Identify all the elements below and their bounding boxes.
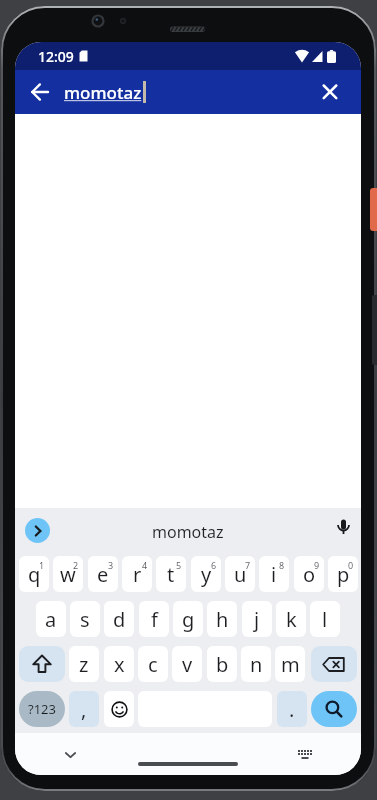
button[interactable] bbox=[58, 743, 82, 767]
staticText: m bbox=[281, 651, 300, 678]
button[interactable] bbox=[19, 646, 65, 682]
button[interactable]: x bbox=[104, 646, 134, 682]
staticText: w bbox=[60, 561, 76, 588]
button[interactable]: l bbox=[310, 601, 340, 637]
button[interactable]: o bbox=[294, 556, 324, 592]
button[interactable] bbox=[314, 76, 346, 108]
staticText: 9 bbox=[314, 559, 320, 571]
staticText: x bbox=[114, 651, 125, 678]
staticText: o bbox=[303, 561, 316, 588]
staticText: k bbox=[286, 606, 297, 633]
button[interactable]: a bbox=[36, 601, 66, 637]
button[interactable]: e bbox=[88, 556, 118, 592]
staticText: . bbox=[289, 696, 295, 723]
button[interactable]: n bbox=[241, 646, 271, 682]
button[interactable]: g bbox=[173, 601, 203, 637]
staticText: e bbox=[97, 561, 109, 588]
button[interactable]: t bbox=[156, 556, 186, 592]
staticText: u bbox=[234, 561, 247, 588]
button[interactable]: i bbox=[259, 556, 289, 592]
staticText: l bbox=[322, 606, 328, 633]
button[interactable]: z bbox=[69, 646, 99, 682]
staticText: 2 bbox=[73, 559, 79, 571]
staticText: 3 bbox=[108, 559, 114, 571]
button[interactable]: v bbox=[172, 646, 202, 682]
button[interactable]: m bbox=[275, 646, 305, 682]
staticText: y bbox=[201, 561, 212, 588]
staticText: 12:09 bbox=[38, 47, 74, 66]
button[interactable]: , bbox=[69, 691, 99, 727]
button[interactable]: d bbox=[104, 601, 134, 637]
button[interactable] bbox=[293, 743, 317, 767]
staticText: t bbox=[167, 561, 175, 588]
button[interactable]: b bbox=[207, 646, 237, 682]
staticText: q bbox=[28, 561, 41, 588]
staticText: s bbox=[80, 606, 90, 633]
staticText: c bbox=[148, 651, 158, 678]
staticText: 5 bbox=[176, 559, 182, 571]
button[interactable] bbox=[24, 76, 56, 108]
button[interactable]: y bbox=[191, 556, 221, 592]
button[interactable]: c bbox=[138, 646, 168, 682]
staticText: g bbox=[182, 606, 195, 633]
staticText: momotaz bbox=[64, 81, 142, 104]
staticText: i bbox=[271, 561, 277, 588]
button[interactable]: u bbox=[225, 556, 255, 592]
staticText: j bbox=[254, 606, 260, 633]
button[interactable]: p bbox=[328, 556, 358, 592]
staticText: ?123 bbox=[28, 700, 56, 718]
staticText: v bbox=[182, 651, 193, 678]
button[interactable]: ?123 bbox=[19, 691, 65, 727]
button[interactable]: w bbox=[53, 556, 83, 592]
staticText: d bbox=[113, 606, 126, 633]
staticText: f bbox=[151, 606, 158, 633]
button[interactable] bbox=[311, 691, 357, 727]
button[interactable]: j bbox=[242, 601, 272, 637]
staticText: h bbox=[216, 606, 229, 633]
staticText: 7 bbox=[245, 559, 251, 571]
button[interactable] bbox=[25, 518, 50, 543]
staticText: a bbox=[45, 606, 57, 633]
button[interactable] bbox=[104, 691, 134, 727]
button[interactable]: . bbox=[277, 691, 307, 727]
staticText: 8 bbox=[279, 559, 285, 571]
button[interactable]: r bbox=[122, 556, 152, 592]
staticText: 6 bbox=[211, 559, 217, 571]
button[interactable]: q bbox=[19, 556, 49, 592]
button[interactable]: f bbox=[139, 601, 169, 637]
button[interactable]: s bbox=[70, 601, 100, 637]
staticText: r bbox=[133, 561, 142, 588]
staticText: , bbox=[81, 696, 87, 723]
staticText: n bbox=[250, 651, 263, 678]
staticText: 4 bbox=[142, 559, 148, 571]
button[interactable]: h bbox=[207, 601, 237, 637]
button[interactable] bbox=[336, 519, 351, 537]
staticText: 0 bbox=[348, 559, 354, 571]
button[interactable]: momotaz bbox=[152, 521, 224, 543]
staticText: 1 bbox=[39, 559, 45, 571]
button[interactable]: k bbox=[276, 601, 306, 637]
button[interactable] bbox=[311, 646, 357, 682]
staticText: p bbox=[337, 561, 350, 588]
staticText: b bbox=[216, 651, 229, 678]
staticText: z bbox=[79, 651, 89, 678]
